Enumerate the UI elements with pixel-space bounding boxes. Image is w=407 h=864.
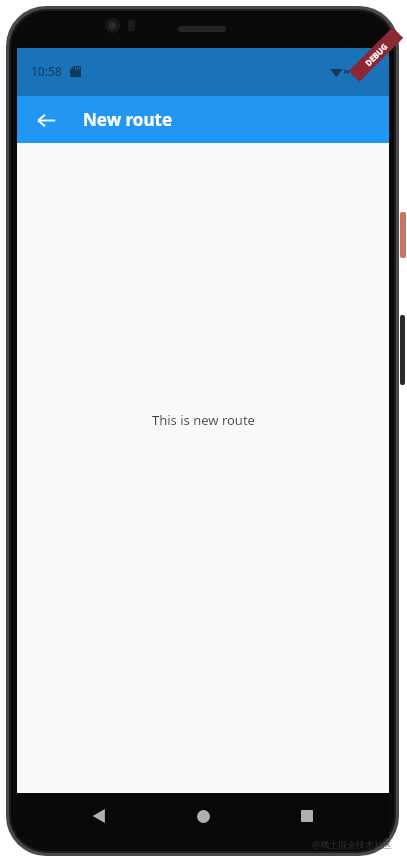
staticText: New route bbox=[83, 108, 173, 131]
button[interactable]: Navigate up bbox=[24, 98, 68, 142]
button[interactable]: Home bbox=[181, 794, 225, 838]
staticText: @稀土掘金技术社区 bbox=[312, 838, 393, 850]
staticText: 10:58 bbox=[31, 63, 62, 79]
button[interactable]: Recent apps bbox=[285, 794, 329, 838]
staticText: DEBUG bbox=[362, 41, 390, 68]
button[interactable]: Back bbox=[77, 794, 121, 838]
staticText: This is new route bbox=[152, 411, 255, 429]
